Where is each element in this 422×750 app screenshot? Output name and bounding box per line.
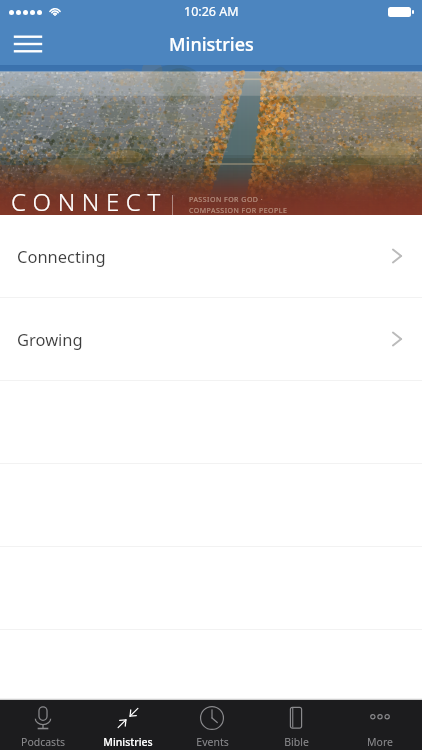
button[interactable]: Open navigation menu bbox=[8, 24, 48, 64]
staticText: More bbox=[367, 735, 393, 749]
button[interactable]: Connecting bbox=[0, 215, 422, 298]
staticText: Ministries bbox=[103, 735, 153, 749]
staticText: Ministries bbox=[169, 32, 254, 57]
staticText: Connecting bbox=[17, 245, 106, 267]
button[interactable]: Podcasts bbox=[0, 700, 85, 750]
staticText: Events bbox=[196, 735, 229, 749]
button[interactable]: Growing bbox=[0, 298, 422, 381]
button[interactable]: More bbox=[338, 700, 422, 750]
staticText: PASSION FOR GOD · bbox=[189, 195, 264, 205]
button[interactable]: Events bbox=[170, 700, 254, 750]
button[interactable]: Bible bbox=[254, 700, 338, 750]
staticText: Growing bbox=[17, 328, 83, 350]
staticText: C O N N E C T bbox=[11, 185, 161, 215]
staticText: COMPASSION FOR PEOPLE bbox=[189, 206, 288, 215]
staticText: Podcasts bbox=[21, 735, 65, 749]
button[interactable]: Ministries bbox=[85, 700, 170, 750]
staticText: Bible bbox=[284, 735, 309, 749]
staticText: 10:26 AM bbox=[184, 3, 239, 20]
